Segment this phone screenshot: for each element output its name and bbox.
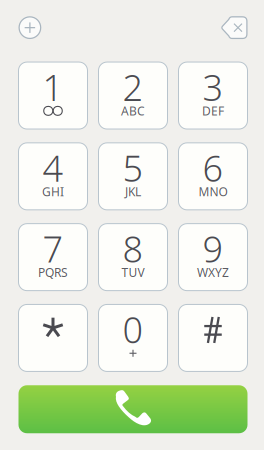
staticText: TUV xyxy=(121,264,144,280)
staticText: 0 xyxy=(122,305,143,353)
staticText: 7 xyxy=(42,225,63,272)
staticText: 4 xyxy=(42,144,63,192)
button[interactable]: 0 xyxy=(98,304,167,371)
button[interactable]: 5 xyxy=(98,143,167,210)
staticText: 6 xyxy=(202,144,223,192)
button[interactable]: Add contact xyxy=(18,16,41,39)
staticText: GHI xyxy=(42,184,64,200)
button[interactable]: 4 xyxy=(18,143,87,210)
button[interactable] xyxy=(18,304,87,371)
button[interactable]: 9 xyxy=(178,224,247,291)
button[interactable]: 3 xyxy=(178,62,247,129)
button[interactable]: Call xyxy=(18,385,247,433)
button[interactable]: 2 xyxy=(98,62,167,129)
button[interactable]: 6 xyxy=(178,143,247,210)
staticText: PQRS xyxy=(38,264,68,280)
staticText: WXYZ xyxy=(197,264,229,280)
button[interactable] xyxy=(178,304,247,371)
staticText: MNO xyxy=(198,184,227,200)
button[interactable]: 8 xyxy=(98,224,167,291)
button[interactable]: 7 xyxy=(18,224,87,291)
staticText: 3 xyxy=(202,63,223,111)
button[interactable]: 1 xyxy=(18,62,87,129)
staticText: 9 xyxy=(202,225,223,272)
staticText: JKL xyxy=(125,184,141,200)
staticText: ABC xyxy=(121,103,145,119)
staticText: 2 xyxy=(122,63,143,111)
staticText: 1 xyxy=(42,63,63,111)
staticText: DEF xyxy=(202,103,224,119)
staticText: 5 xyxy=(122,144,143,192)
staticText: 8 xyxy=(122,225,143,272)
button[interactable]: Delete xyxy=(220,16,247,39)
